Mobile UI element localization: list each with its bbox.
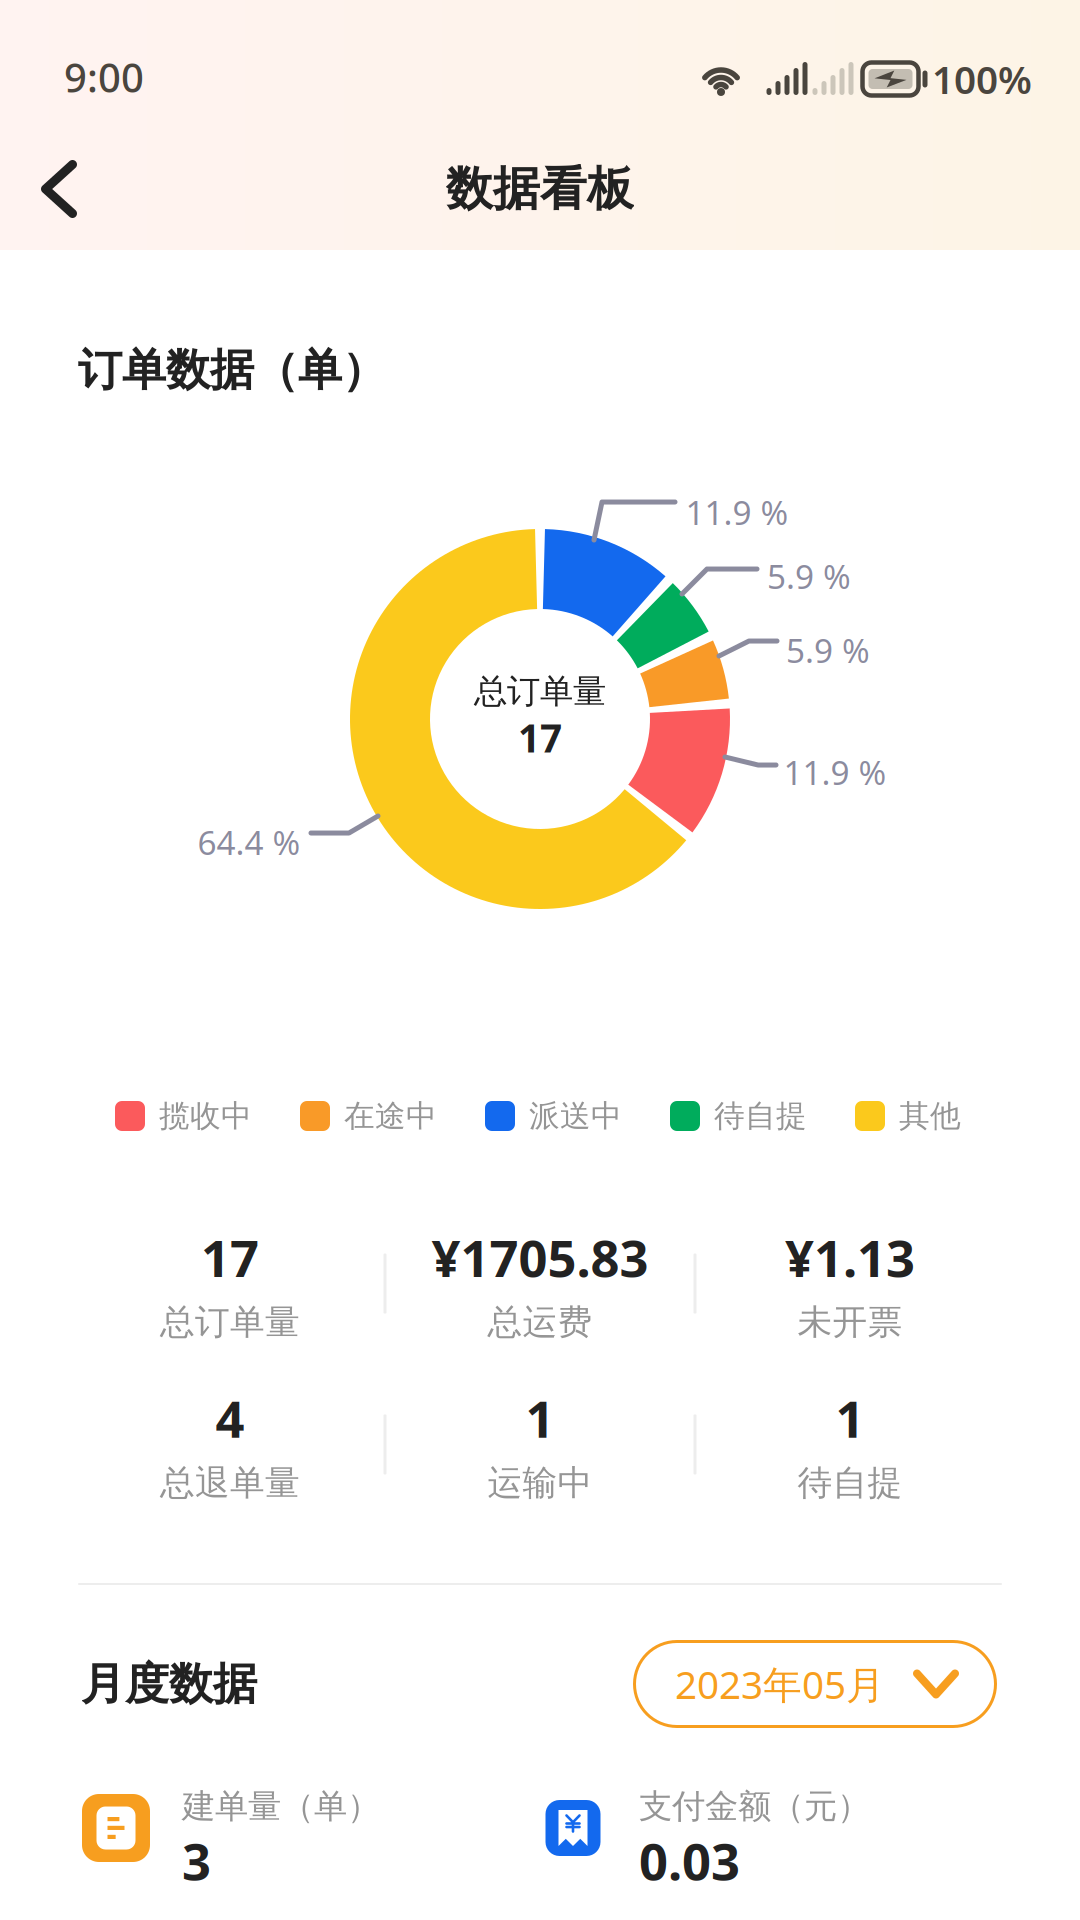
staticText: 1 <box>835 1384 864 1452</box>
staticText: 64.4 % <box>197 820 300 864</box>
staticText: 未开票 <box>797 1301 902 1343</box>
staticText: ¥1705.83 <box>431 1224 648 1291</box>
staticText: ¥1.13 <box>785 1224 915 1291</box>
staticText: 月度数据 <box>81 1657 257 1711</box>
button[interactable]: 2023年05月 <box>634 1641 995 1726</box>
staticText: 建单量（单） <box>182 1786 380 1827</box>
staticText: 3 <box>182 1827 211 1894</box>
staticText: 待自提 <box>797 1462 902 1504</box>
staticText: 派送中 <box>529 1097 622 1135</box>
staticText: 总订单量 <box>474 671 606 712</box>
staticText: 订单数据（单） <box>78 343 386 397</box>
staticText: 待自提 <box>714 1097 807 1135</box>
staticText: 数据看板 <box>446 160 634 218</box>
staticText: 2023年05月 <box>675 1658 885 1710</box>
staticText: 其他 <box>899 1097 961 1135</box>
staticText: 0.03 <box>639 1827 740 1894</box>
staticText: 运输中 <box>487 1462 592 1504</box>
staticText: 9:00 <box>64 50 144 103</box>
staticText: 100% <box>932 53 1032 105</box>
staticText: 17 <box>518 712 562 763</box>
button[interactable]: Back <box>0 124 116 253</box>
staticText: 总退单量 <box>160 1462 300 1504</box>
staticText: 5.9 % <box>767 554 851 598</box>
staticText: 11.9 % <box>783 750 886 794</box>
staticText: 11.9 % <box>685 490 788 534</box>
staticText: 1 <box>525 1384 554 1452</box>
staticText: 17 <box>201 1224 259 1291</box>
staticText: 在途中 <box>344 1097 437 1135</box>
staticText: 支付金额（元） <box>639 1786 870 1827</box>
staticText: 总订单量 <box>160 1301 300 1343</box>
staticText: 揽收中 <box>159 1097 252 1135</box>
staticText: 4 <box>215 1384 244 1452</box>
staticText: 总运费 <box>487 1301 592 1343</box>
staticText: 5.9 % <box>786 628 870 672</box>
